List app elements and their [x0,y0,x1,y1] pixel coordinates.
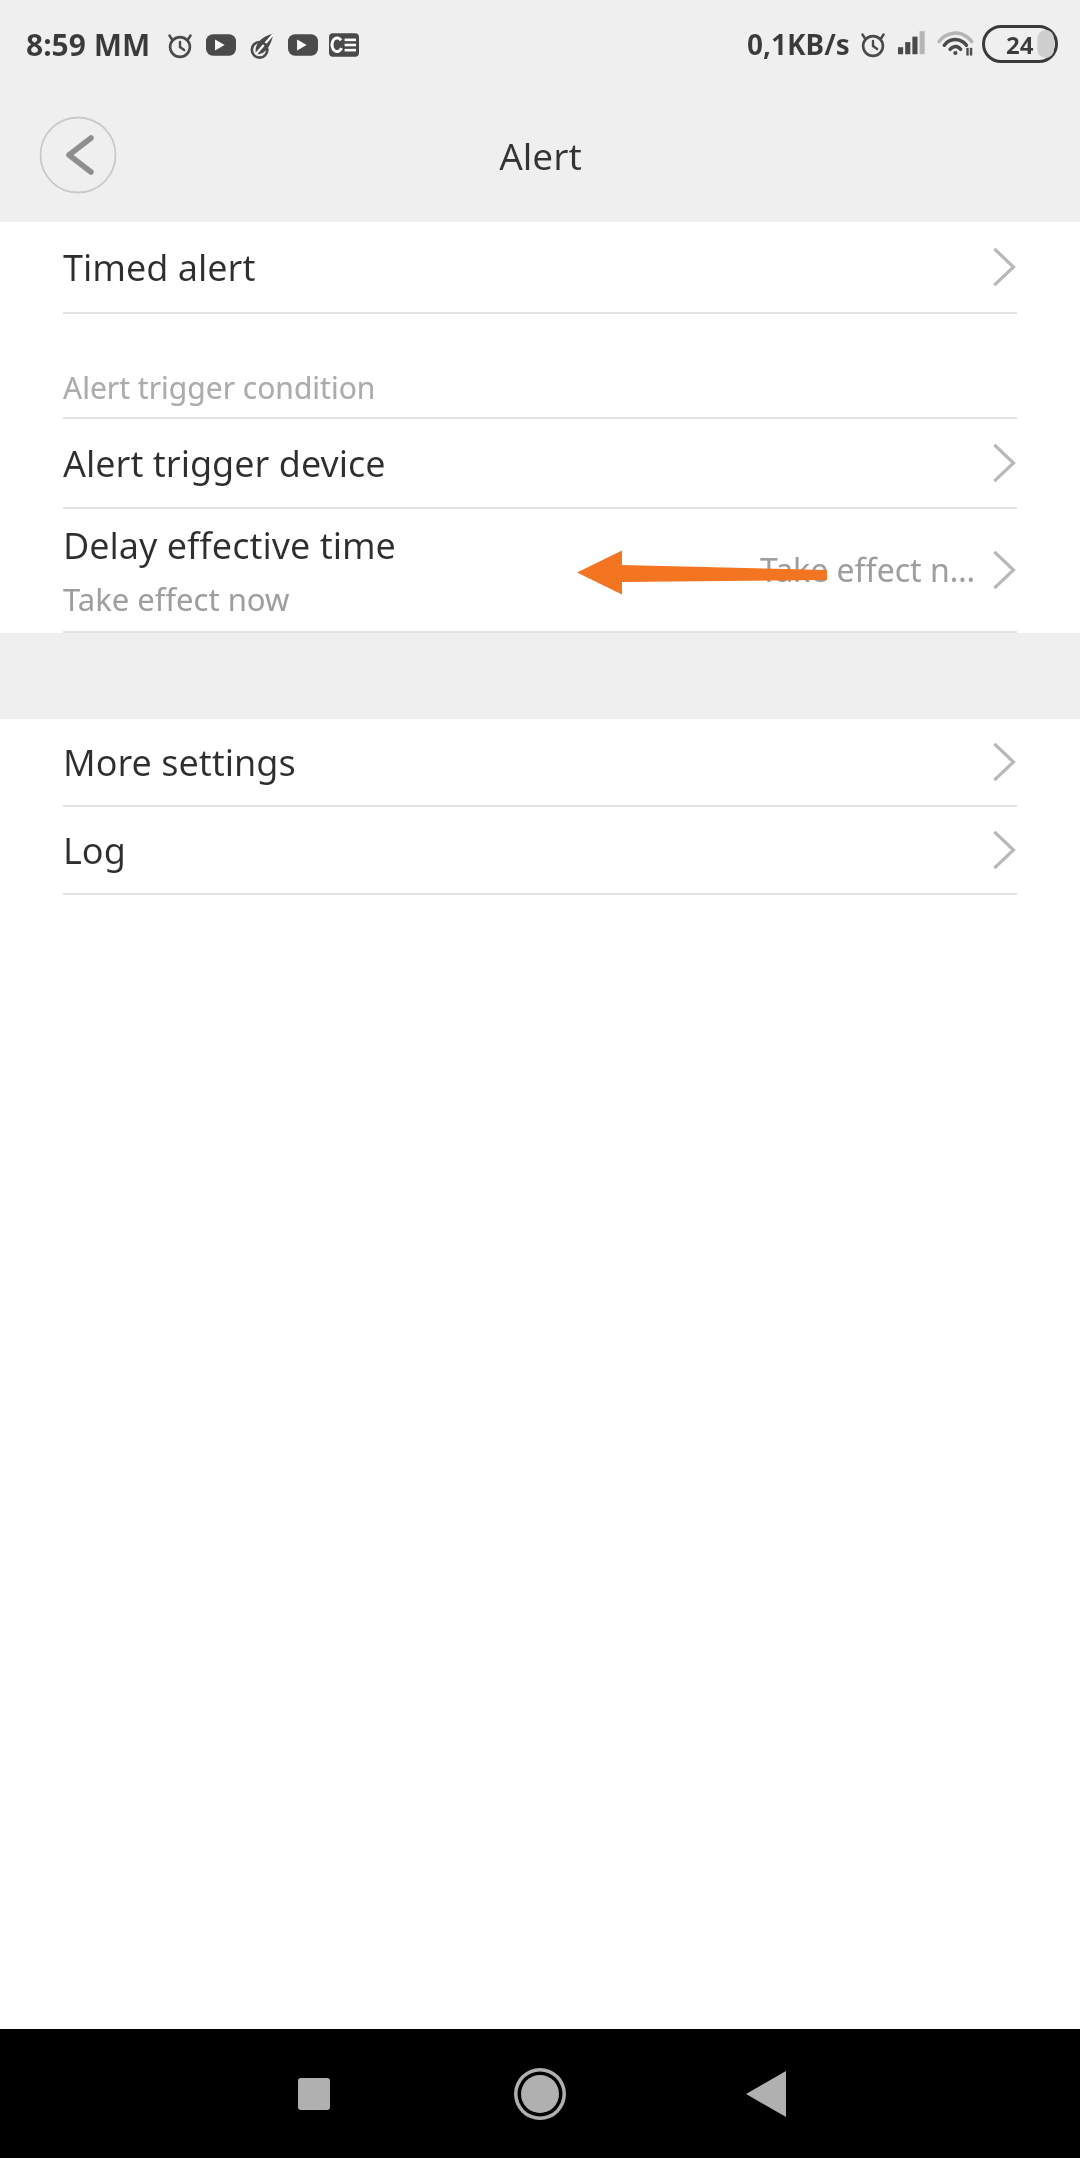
button[interactable]: Back [720,2048,812,2140]
staticText: Alert trigger device [63,439,995,488]
staticText: Timed alert [63,243,995,292]
button[interactable]: More settings [0,719,1080,805]
staticText: Alert trigger condition [63,367,376,408]
button[interactable]: Timed alert [0,222,1080,312]
staticText: Delay effective time [63,521,396,570]
button[interactable]: Log [0,807,1080,893]
staticText: 0,1KB/s [747,25,850,63]
staticText: 24 [1006,28,1034,61]
staticText: Take effect n… [759,548,975,592]
staticText: Alert [499,130,582,180]
button[interactable]: Recent apps [268,2048,360,2140]
button[interactable]: Back [39,116,117,194]
button[interactable]: Home [494,2048,586,2140]
button[interactable]: Delay effective time [0,509,1080,631]
staticText: Take effect now [63,578,290,620]
staticText: Log [63,826,995,875]
staticText: More settings [63,738,995,787]
staticText: 8:59 MM [26,24,151,65]
button[interactable]: Alert trigger device [0,419,1080,507]
